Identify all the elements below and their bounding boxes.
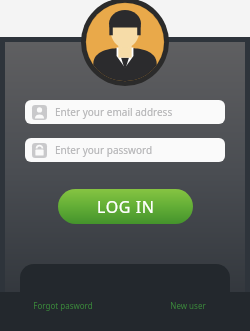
button[interactable]: LOG IN (58, 189, 193, 224)
button[interactable]: Forgot pasword (0, 300, 125, 311)
button[interactable]: Enter your password (25, 138, 225, 162)
button[interactable]: Enter your email address (25, 100, 225, 124)
staticText: Enter your password (55, 143, 153, 157)
staticText: New user (170, 300, 206, 311)
staticText: Enter your email address (55, 105, 173, 119)
other: User avatar (81, 0, 169, 86)
button[interactable]: New user (125, 300, 250, 311)
staticText: LOG IN (97, 196, 155, 218)
staticText: Forgot pasword (33, 300, 93, 311)
